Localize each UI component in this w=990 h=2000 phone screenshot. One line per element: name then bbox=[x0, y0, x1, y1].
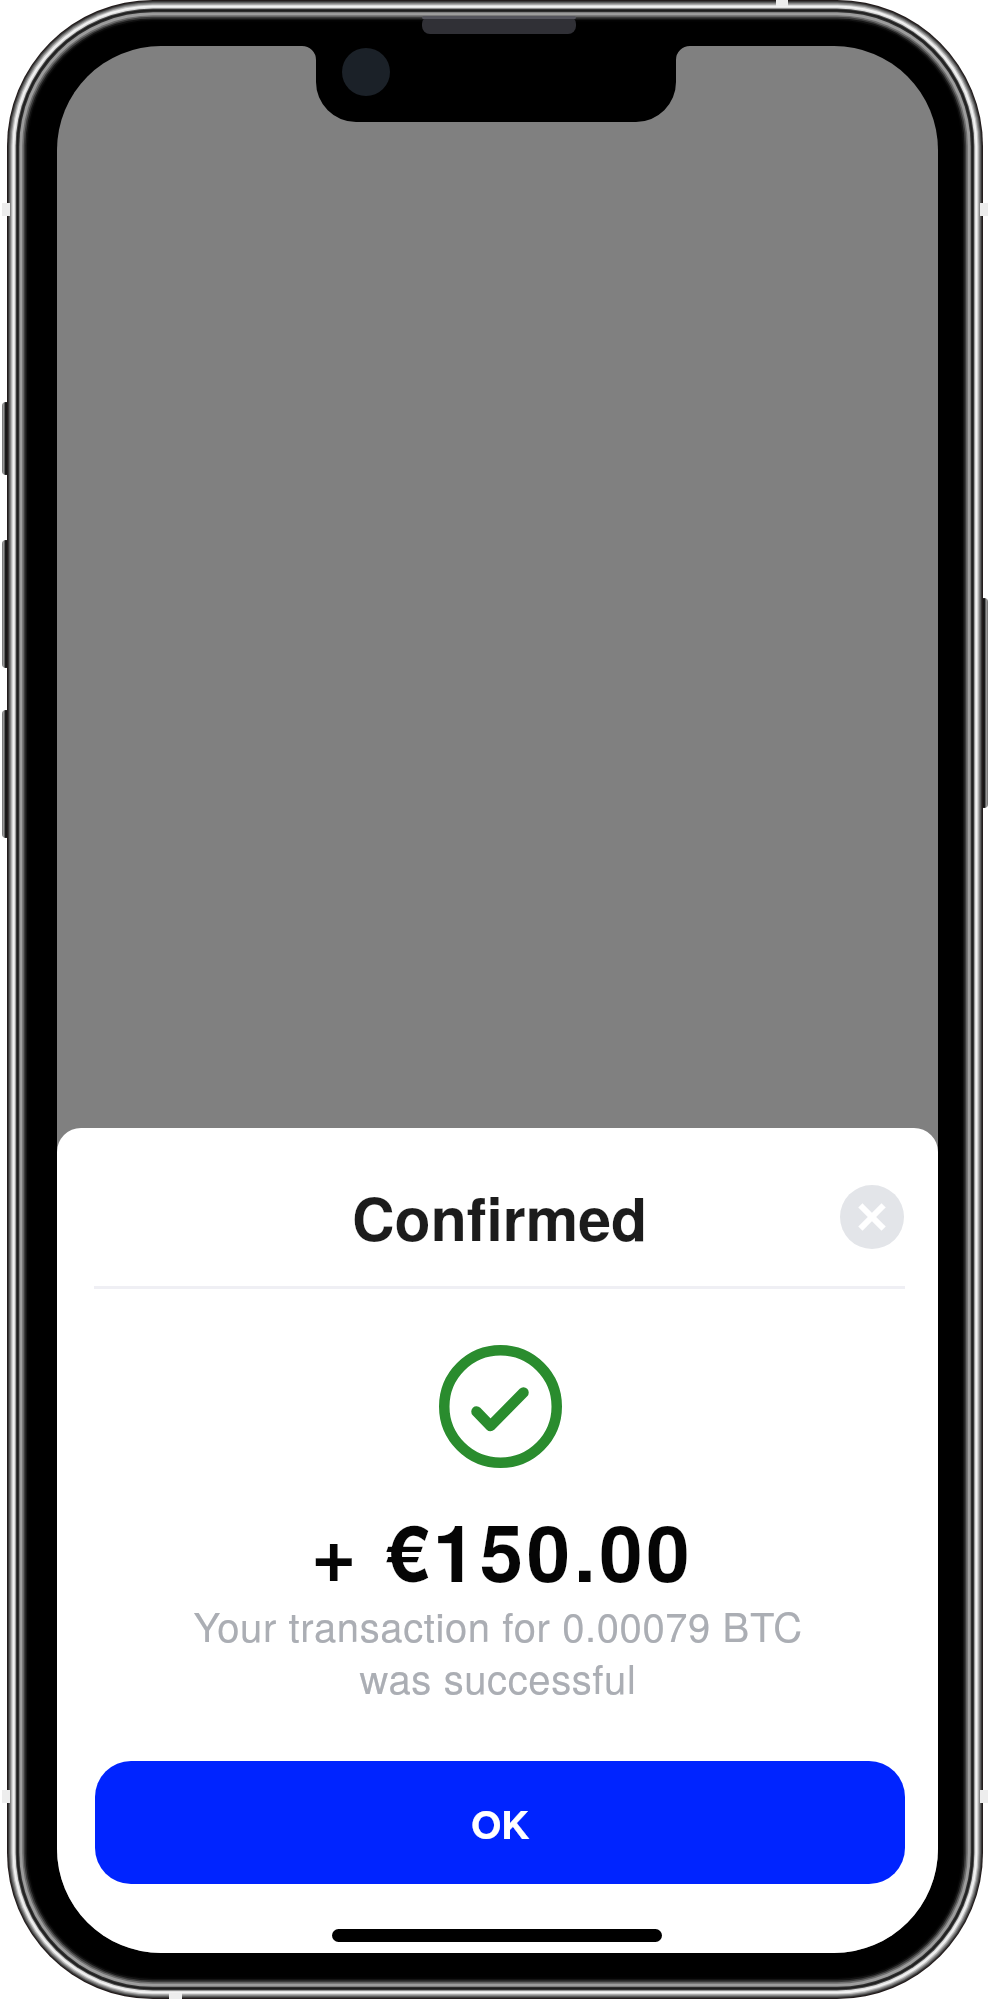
staticText: OK bbox=[471, 1795, 530, 1851]
staticText: Confirmed bbox=[352, 1175, 648, 1259]
button[interactable]: Close bbox=[840, 1185, 904, 1249]
staticText: + €150.00 bbox=[311, 1494, 694, 1606]
staticText: Your transaction for 0.00079 BTC was suc… bbox=[189, 1596, 807, 1706]
button[interactable]: OK bbox=[95, 1761, 905, 1884]
